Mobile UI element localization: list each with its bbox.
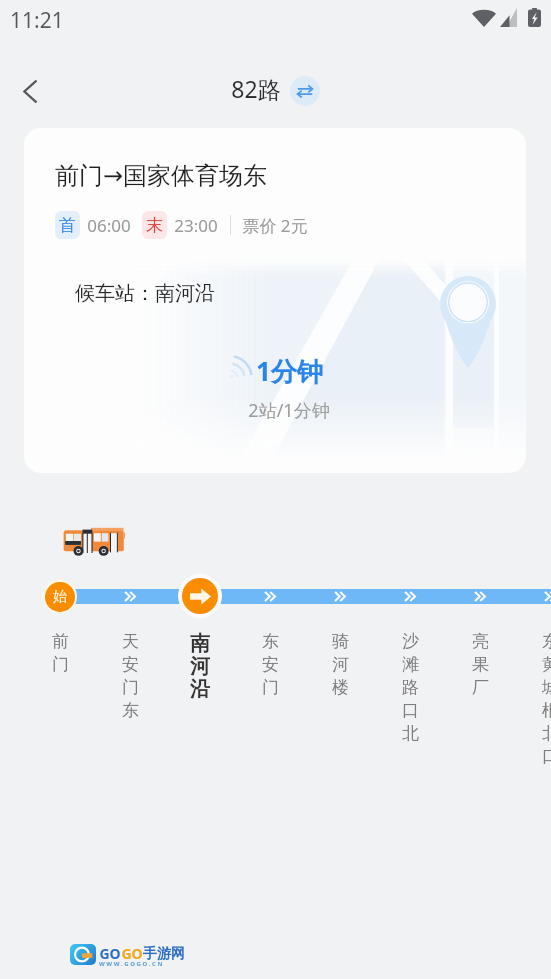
staticText: 门 — [52, 654, 69, 677]
staticText: 门 — [122, 677, 139, 700]
button[interactable]: 骑 — [315, 631, 365, 700]
button[interactable]: 东 — [245, 631, 295, 700]
staticText: 河 — [190, 654, 210, 677]
staticText: 口 — [402, 700, 419, 723]
button[interactable]: Current bus position — [182, 578, 218, 614]
staticText: 亮 — [472, 631, 489, 654]
staticText: 厂 — [472, 677, 489, 700]
staticText: 路 — [402, 677, 419, 700]
staticText: 前 — [52, 631, 69, 654]
staticText: 果 — [472, 654, 489, 677]
button[interactable]: Back — [8, 69, 52, 113]
staticText: 23:00 — [174, 214, 218, 237]
staticText: 天 — [122, 631, 139, 654]
button[interactable]: 前门→国家体育场东 — [24, 128, 526, 473]
staticText: 骑 — [332, 631, 349, 654]
button[interactable]: Switch direction — [290, 76, 320, 106]
staticText: 口 — [542, 746, 551, 769]
staticText: 候车站：南河沿 — [75, 281, 215, 306]
staticText: 楼 — [332, 677, 349, 700]
staticText: 滩 — [402, 654, 419, 677]
staticText: 末 — [146, 215, 163, 236]
staticText: 北 — [542, 723, 551, 746]
staticText: 82路 — [231, 73, 281, 104]
staticText: 南 — [190, 631, 210, 654]
staticText: 始 — [53, 588, 67, 606]
button[interactable]: 东 — [525, 631, 551, 769]
button[interactable]: 始 — [45, 582, 75, 612]
staticText: 黄 — [542, 654, 551, 677]
staticText: 沿 — [190, 677, 210, 700]
staticText: 安 — [262, 654, 279, 677]
staticText: 北 — [402, 723, 419, 746]
staticText: 票价 2元 — [242, 214, 308, 237]
staticText: 东 — [262, 631, 279, 654]
button[interactable]: 南 — [175, 631, 225, 700]
staticText: 门 — [262, 677, 279, 700]
staticText: 手游网 — [143, 945, 185, 963]
staticText: 首 — [59, 215, 76, 236]
staticText: 2站/1分钟 — [243, 398, 335, 423]
button[interactable]: 天 — [105, 631, 155, 723]
button[interactable]: 沙 — [385, 631, 435, 746]
button[interactable]: 亮 — [455, 631, 505, 700]
staticText: W W W . G O G O . C N — [99, 960, 163, 968]
staticText: 06:00 — [87, 214, 131, 237]
staticText: GO — [99, 944, 121, 963]
staticText: 前门→国家体育场东 — [55, 161, 268, 191]
staticText: 11:21 — [10, 6, 64, 35]
staticText: 城 — [542, 677, 551, 700]
staticText: 东 — [542, 631, 551, 654]
staticText: 沙 — [402, 631, 419, 654]
staticText: 根 — [542, 700, 551, 723]
button[interactable]: 前 — [35, 631, 85, 677]
staticText: 1分钟 — [256, 353, 323, 389]
staticText: GO — [121, 944, 143, 963]
staticText: 东 — [122, 700, 139, 723]
staticText: 河 — [332, 654, 349, 677]
staticText: 安 — [122, 654, 139, 677]
